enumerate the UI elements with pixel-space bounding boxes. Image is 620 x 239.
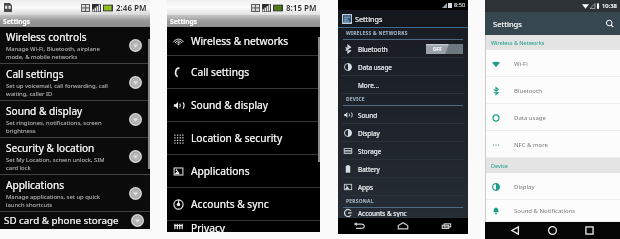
- staticText: Call settings: [191, 65, 250, 79]
- staticText: Settings: [493, 19, 522, 29]
- staticText: Sound & Notifications: [514, 207, 576, 215]
- staticText: Set up voicemail, call forwarding, call …: [6, 82, 108, 98]
- staticText: Apps: [358, 183, 463, 192]
- staticText: Manage Wi-Fi, Bluetooth, airplane mode, …: [6, 45, 100, 61]
- button[interactable]: Bluetooth: [338, 40, 468, 58]
- staticText: Bluetooth: [358, 45, 426, 54]
- button[interactable]: Home: [546, 224, 559, 237]
- button[interactable]: Storage: [338, 142, 468, 160]
- staticText: NFC & more: [514, 141, 548, 149]
- button[interactable]: Applications: [0, 175, 150, 211]
- button[interactable]: Accounts & sync: [167, 188, 320, 220]
- staticText: Settings: [3, 17, 31, 26]
- staticText: SD card & phone storage: [4, 214, 131, 227]
- staticText: Wireless & networks: [191, 34, 289, 48]
- staticText: Display: [358, 129, 463, 138]
- button[interactable]: Accounts & sync: [338, 208, 468, 218]
- staticText: 8:50: [454, 1, 466, 9]
- staticText: Call settings: [6, 67, 64, 81]
- button[interactable]: Back: [352, 220, 366, 232]
- staticText: DEVICE: [346, 96, 365, 103]
- staticText: Accounts & sync: [191, 197, 269, 211]
- button[interactable]: Sound & display: [167, 89, 320, 121]
- button[interactable]: Display: [338, 124, 468, 142]
- button[interactable]: Home: [396, 220, 410, 232]
- staticText: Settings: [355, 14, 383, 24]
- staticText: Wireless & Networks: [491, 39, 545, 46]
- button[interactable]: Recents: [440, 220, 454, 232]
- button[interactable]: SD card & phone storage: [0, 212, 150, 229]
- staticText: Set ringtones, notifications, screen bri…: [6, 119, 102, 135]
- staticText: Set My Location, screen unlock, SIM card…: [6, 156, 105, 172]
- button[interactable]: Display: [485, 173, 620, 200]
- button[interactable]: Bluetooth: [485, 77, 620, 104]
- staticText: Security & location: [6, 141, 95, 155]
- staticText: WIRELESS & NETWORKS: [346, 30, 408, 37]
- staticText: Location & security: [191, 131, 283, 145]
- button[interactable]: Battery: [338, 160, 468, 178]
- staticText: Sound: [358, 111, 463, 120]
- button[interactable]: Location & security: [167, 122, 320, 154]
- staticText: Battery: [358, 165, 463, 174]
- button[interactable]: Search: [605, 19, 615, 29]
- staticText: Accounts & sync: [358, 209, 463, 218]
- button[interactable]: Data usage: [485, 104, 620, 131]
- button[interactable]: NFC & more: [485, 131, 620, 158]
- staticText: Manage applications, set up quick launch…: [6, 193, 100, 209]
- staticText: Applications: [6, 178, 65, 192]
- staticText: More...: [358, 81, 463, 90]
- button[interactable]: Applications: [167, 155, 320, 187]
- staticText: Wireless controls: [6, 30, 87, 44]
- button[interactable]: Apps: [338, 178, 468, 196]
- staticText: Applications: [191, 164, 250, 178]
- button[interactable]: Call settings: [0, 64, 150, 100]
- staticText: Bluetooth: [514, 87, 542, 95]
- staticText: Storage: [358, 147, 463, 156]
- staticText: 2:46 PM: [116, 2, 147, 13]
- staticText: Data usage: [514, 114, 546, 122]
- staticText: Device: [491, 162, 508, 169]
- staticText: Wi-Fi: [514, 60, 528, 68]
- button[interactable]: Security & location: [0, 138, 150, 174]
- staticText: Privacy: [191, 221, 225, 232]
- button[interactable]: More...: [338, 76, 468, 94]
- button[interactable]: Wireless & networks: [167, 27, 320, 55]
- button[interactable]: Data usage: [338, 58, 468, 76]
- button[interactable]: Wi-Fi: [485, 50, 620, 77]
- staticText: Settings: [170, 17, 198, 26]
- staticText: 10:38: [602, 2, 617, 10]
- staticText: 8:15 PM: [286, 2, 317, 13]
- staticText: OFF: [433, 46, 442, 52]
- button[interactable]: Sound: [338, 106, 468, 124]
- button[interactable]: Privacy: [167, 221, 320, 232]
- button[interactable]: Wireless controls: [0, 27, 150, 63]
- staticText: Display: [514, 183, 535, 191]
- staticText: Sound & display: [6, 104, 83, 118]
- button[interactable]: Recents: [583, 224, 596, 237]
- button[interactable]: Sound & display: [0, 101, 150, 137]
- staticText: PERSONAL: [346, 198, 374, 205]
- staticText: Data usage: [358, 63, 463, 72]
- button[interactable]: Back: [509, 224, 522, 237]
- button[interactable]: Call settings: [167, 56, 320, 88]
- button[interactable]: Sound & Notifications: [485, 200, 620, 222]
- staticText: Sound & display: [191, 98, 268, 112]
